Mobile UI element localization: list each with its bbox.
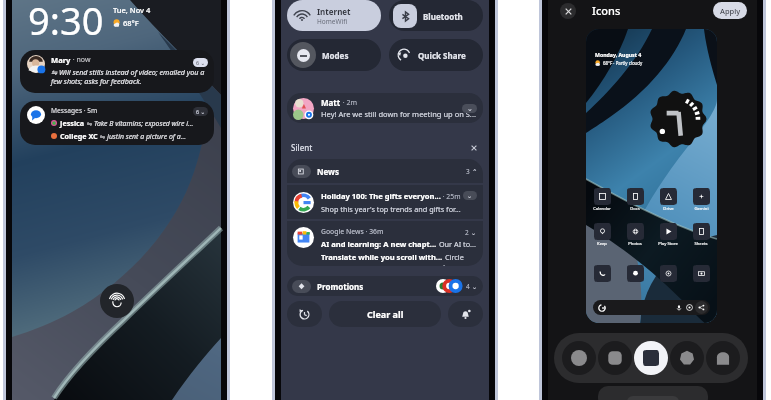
button[interactable]: App xyxy=(622,265,648,282)
button[interactable]: Icon shape 3 xyxy=(670,341,704,375)
staticText: · 25m xyxy=(441,192,461,201)
staticText: Our AI to... xyxy=(437,239,476,249)
button[interactable]: Apply xyxy=(713,2,747,19)
staticText: Shop this year's top trends and gifts fo… xyxy=(321,204,461,214)
staticText: Mary xyxy=(51,55,71,65)
staticText: ⌄ xyxy=(471,229,477,236)
staticText: 4 xyxy=(466,282,472,291)
staticText: 2 xyxy=(465,228,471,237)
staticText: Google News · 36m xyxy=(321,227,384,236)
button[interactable]: Modes xyxy=(287,39,381,71)
button[interactable]: Clear all xyxy=(329,301,441,327)
staticText: Monday, August 4 xyxy=(595,51,642,58)
staticText: News xyxy=(317,166,339,177)
button[interactable]: Photos xyxy=(622,223,648,247)
button[interactable]: Sheets xyxy=(688,223,714,247)
button[interactable]: Matt xyxy=(287,93,483,123)
staticText: HomeWifi xyxy=(317,17,348,26)
button[interactable]: Icon shape 0 xyxy=(562,341,596,375)
staticText: 68°F · Partly cloudy xyxy=(603,60,643,66)
staticText: ⇋ Will send stills instead of video; ema… xyxy=(51,67,208,87)
button[interactable]: Bluetooth xyxy=(389,0,483,31)
staticText: AI and learning: A new chapt... xyxy=(321,239,437,249)
button[interactable]: Drive xyxy=(655,188,681,212)
staticText: Holiday 100: The gifts everyon... xyxy=(321,191,441,201)
button[interactable]: Play Store xyxy=(655,223,681,247)
button[interactable]: App xyxy=(688,265,714,282)
staticText: Docs xyxy=(630,206,640,212)
button[interactable]: Docs xyxy=(622,188,648,212)
button[interactable]: App xyxy=(589,265,615,282)
staticText: 68°F xyxy=(123,18,139,28)
staticText: 9:30 xyxy=(28,0,104,38)
button[interactable]: Calendar xyxy=(589,188,615,212)
staticText: Translate while you scroll with... xyxy=(321,252,443,262)
staticText: Sheets xyxy=(694,241,708,247)
staticText: Matt xyxy=(321,97,341,108)
staticText: Promotions xyxy=(317,281,364,292)
button[interactable]: Holiday 100: The gifts everyon... xyxy=(287,185,483,219)
staticText: · now xyxy=(71,55,91,65)
button[interactable]: Gemini xyxy=(688,188,714,212)
staticText: · 2m xyxy=(341,98,358,108)
button[interactable]: App xyxy=(655,265,681,282)
staticText: Silent xyxy=(291,142,313,153)
staticText: ⌄ xyxy=(467,105,473,113)
button[interactable]: Internet xyxy=(287,0,381,31)
staticText: ⌄ xyxy=(467,192,473,199)
staticText: 6 ⌄ xyxy=(196,59,206,66)
button[interactable]: Quick Share xyxy=(389,39,483,71)
staticText: 3 xyxy=(466,167,472,176)
button[interactable]: Close xyxy=(560,3,576,19)
staticText: Apply xyxy=(720,6,741,16)
staticText: Calendar xyxy=(593,206,611,212)
button[interactable]: Google Lens xyxy=(684,302,695,313)
button[interactable]: Circle to Search xyxy=(695,301,708,314)
staticText: Photos xyxy=(628,241,642,247)
staticText: ⇋ xyxy=(98,132,107,141)
button[interactable]: Expand messages xyxy=(193,107,208,116)
staticText: Take B vitamins; exposed wire i... xyxy=(94,119,194,128)
button[interactable]: Mary xyxy=(20,50,214,93)
staticText: Quick Share xyxy=(418,50,466,61)
staticText: ⌃ xyxy=(472,168,478,176)
button[interactable]: Dismiss silent xyxy=(468,142,479,153)
button[interactable]: Keep xyxy=(589,223,615,247)
staticText: ⌄ xyxy=(472,283,478,290)
staticText: Play Store xyxy=(658,241,678,247)
button[interactable]: Icon shape 1 xyxy=(598,341,632,375)
button[interactable]: Expand xyxy=(462,104,477,113)
staticText: Modes xyxy=(322,50,349,61)
staticText: Justin sent a picture of a... xyxy=(107,132,186,141)
staticText: Internet xyxy=(317,6,351,17)
staticText: Messages · 5m xyxy=(51,106,98,115)
staticText: Drive xyxy=(663,206,674,212)
button[interactable]: Promotions xyxy=(287,276,483,296)
staticText: Icons xyxy=(592,3,621,18)
button[interactable]: Expand notification xyxy=(193,58,208,67)
button[interactable]: Notification settings xyxy=(448,301,483,327)
staticText: Tue, Nov 4 xyxy=(113,5,151,15)
staticText: ⇋ xyxy=(85,119,94,128)
button[interactable]: Voice search xyxy=(593,300,710,315)
button[interactable]: News xyxy=(287,159,483,183)
staticText: Bluetooth xyxy=(423,11,463,22)
button[interactable]: Google News · 36m xyxy=(287,221,483,266)
button[interactable]: Messages · 5m xyxy=(20,101,214,145)
button[interactable]: Icon shape 4 xyxy=(706,341,740,375)
button[interactable]: Fingerprint unlock xyxy=(100,284,134,318)
button[interactable]: Expand xyxy=(463,191,477,200)
staticText: Jessica xyxy=(60,118,85,128)
staticText: Circle to... xyxy=(443,252,477,266)
staticText: 6 ⌄ xyxy=(196,108,206,115)
button[interactable]: Icon shape 2 xyxy=(634,341,668,375)
button[interactable]: History xyxy=(287,301,322,327)
staticText: College XC xyxy=(60,131,98,141)
staticText: Clear all xyxy=(367,308,404,320)
button[interactable]: Voice search xyxy=(673,302,684,313)
staticText: Keep xyxy=(597,241,607,247)
staticText: Hey! Are we still down for meeting up on… xyxy=(321,109,476,119)
staticText: Gemini xyxy=(694,206,709,212)
